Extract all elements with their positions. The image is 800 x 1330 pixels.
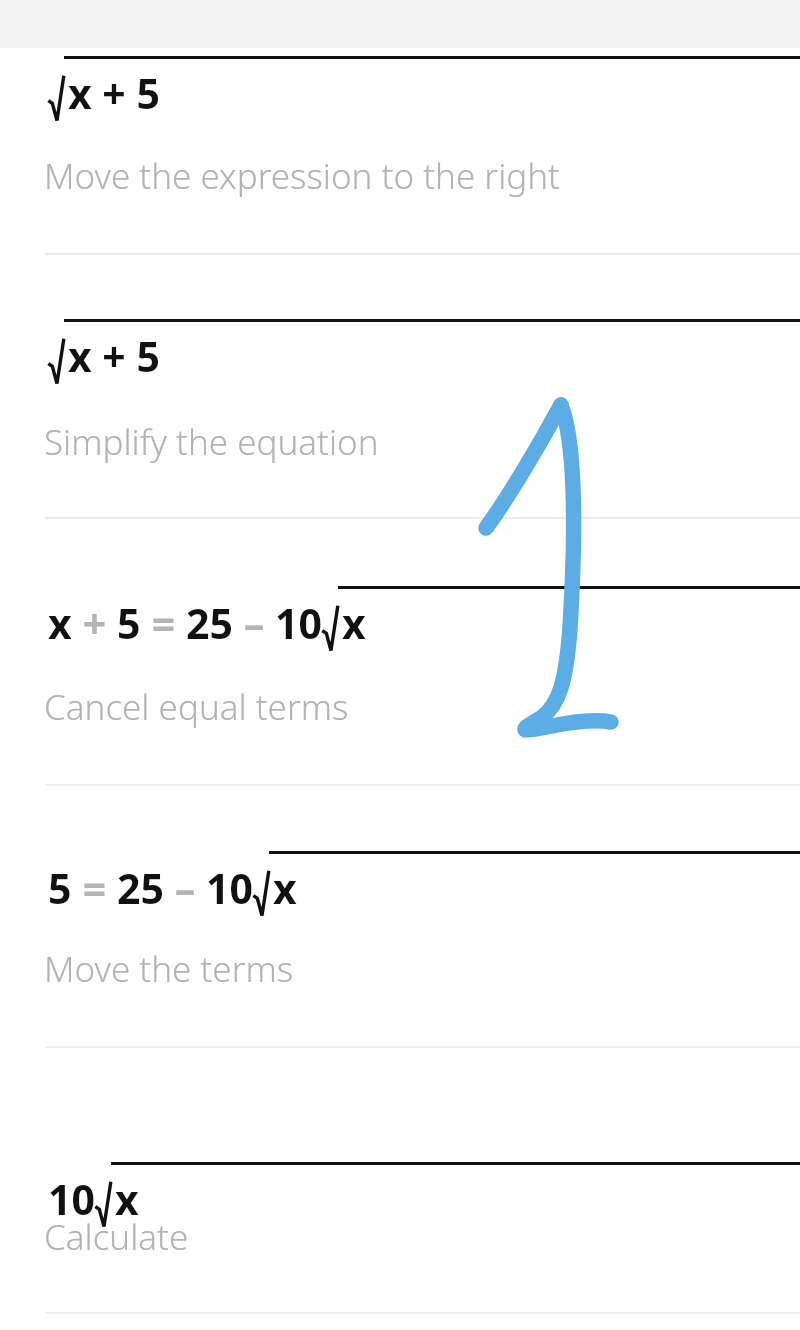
staticText: x (273, 860, 297, 916)
staticText: x + 5 (68, 328, 160, 384)
staticText: Calculate (44, 1213, 189, 1261)
button[interactable]: Move the terms (0, 784, 800, 1046)
staticText: x (342, 595, 366, 651)
button[interactable]: Calculate (0, 1046, 800, 1312)
button[interactable]: Cancel equal terms (0, 517, 800, 784)
staticText: + (72, 595, 117, 651)
staticText: x (115, 1171, 139, 1227)
staticText: = (72, 860, 117, 916)
staticText: – (233, 595, 275, 651)
staticText: 10 (275, 595, 322, 651)
staticText: 10 (206, 860, 253, 916)
staticText: Cancel equal terms (44, 683, 349, 731)
button[interactable]: Simplify the equation (0, 253, 800, 517)
staticText: Simplify the equation (44, 418, 379, 466)
staticText: Move the expression to the right (44, 152, 560, 200)
staticText: – (164, 860, 206, 916)
button[interactable]: Move the expression to the right (0, 50, 800, 253)
staticText: 5 (117, 595, 141, 651)
staticText: 25 (117, 860, 164, 916)
staticText: 25 (186, 595, 233, 651)
staticText: Move the terms (44, 945, 294, 993)
staticText: 5 (48, 860, 72, 916)
staticText: 10 (48, 1171, 95, 1227)
staticText: = (141, 595, 186, 651)
staticText: x + 5 (68, 65, 160, 121)
staticText: x (48, 595, 72, 651)
